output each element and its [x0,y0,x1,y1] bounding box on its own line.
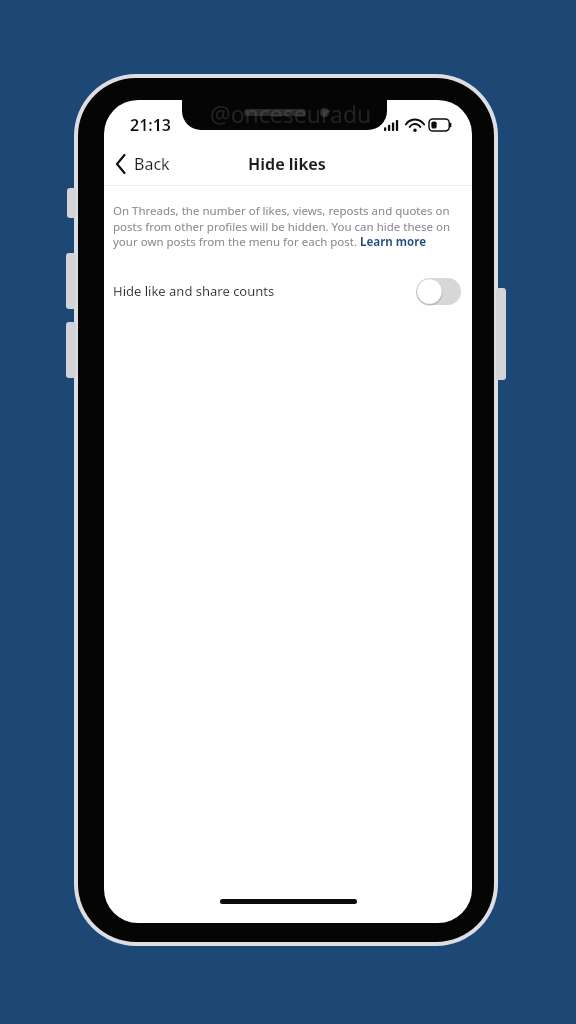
other: Power [496,288,506,380]
other: Volume down [66,322,76,378]
button[interactable]: Back [104,147,182,181]
other: Volume up [66,253,76,309]
button[interactable]: Hide like and share counts toggle [416,278,461,305]
other: Silence switch [67,188,76,218]
staticText: Back [134,153,170,175]
staticText: On Threads, the number of likes, views, … [113,203,462,249]
button[interactable]: Hide like and share counts [104,271,472,311]
staticText: Hide likes [248,153,326,175]
staticText: 21:13 [130,114,172,136]
staticText: Hide like and share counts [113,282,275,300]
staticText: @onceseuradu [210,98,372,129]
